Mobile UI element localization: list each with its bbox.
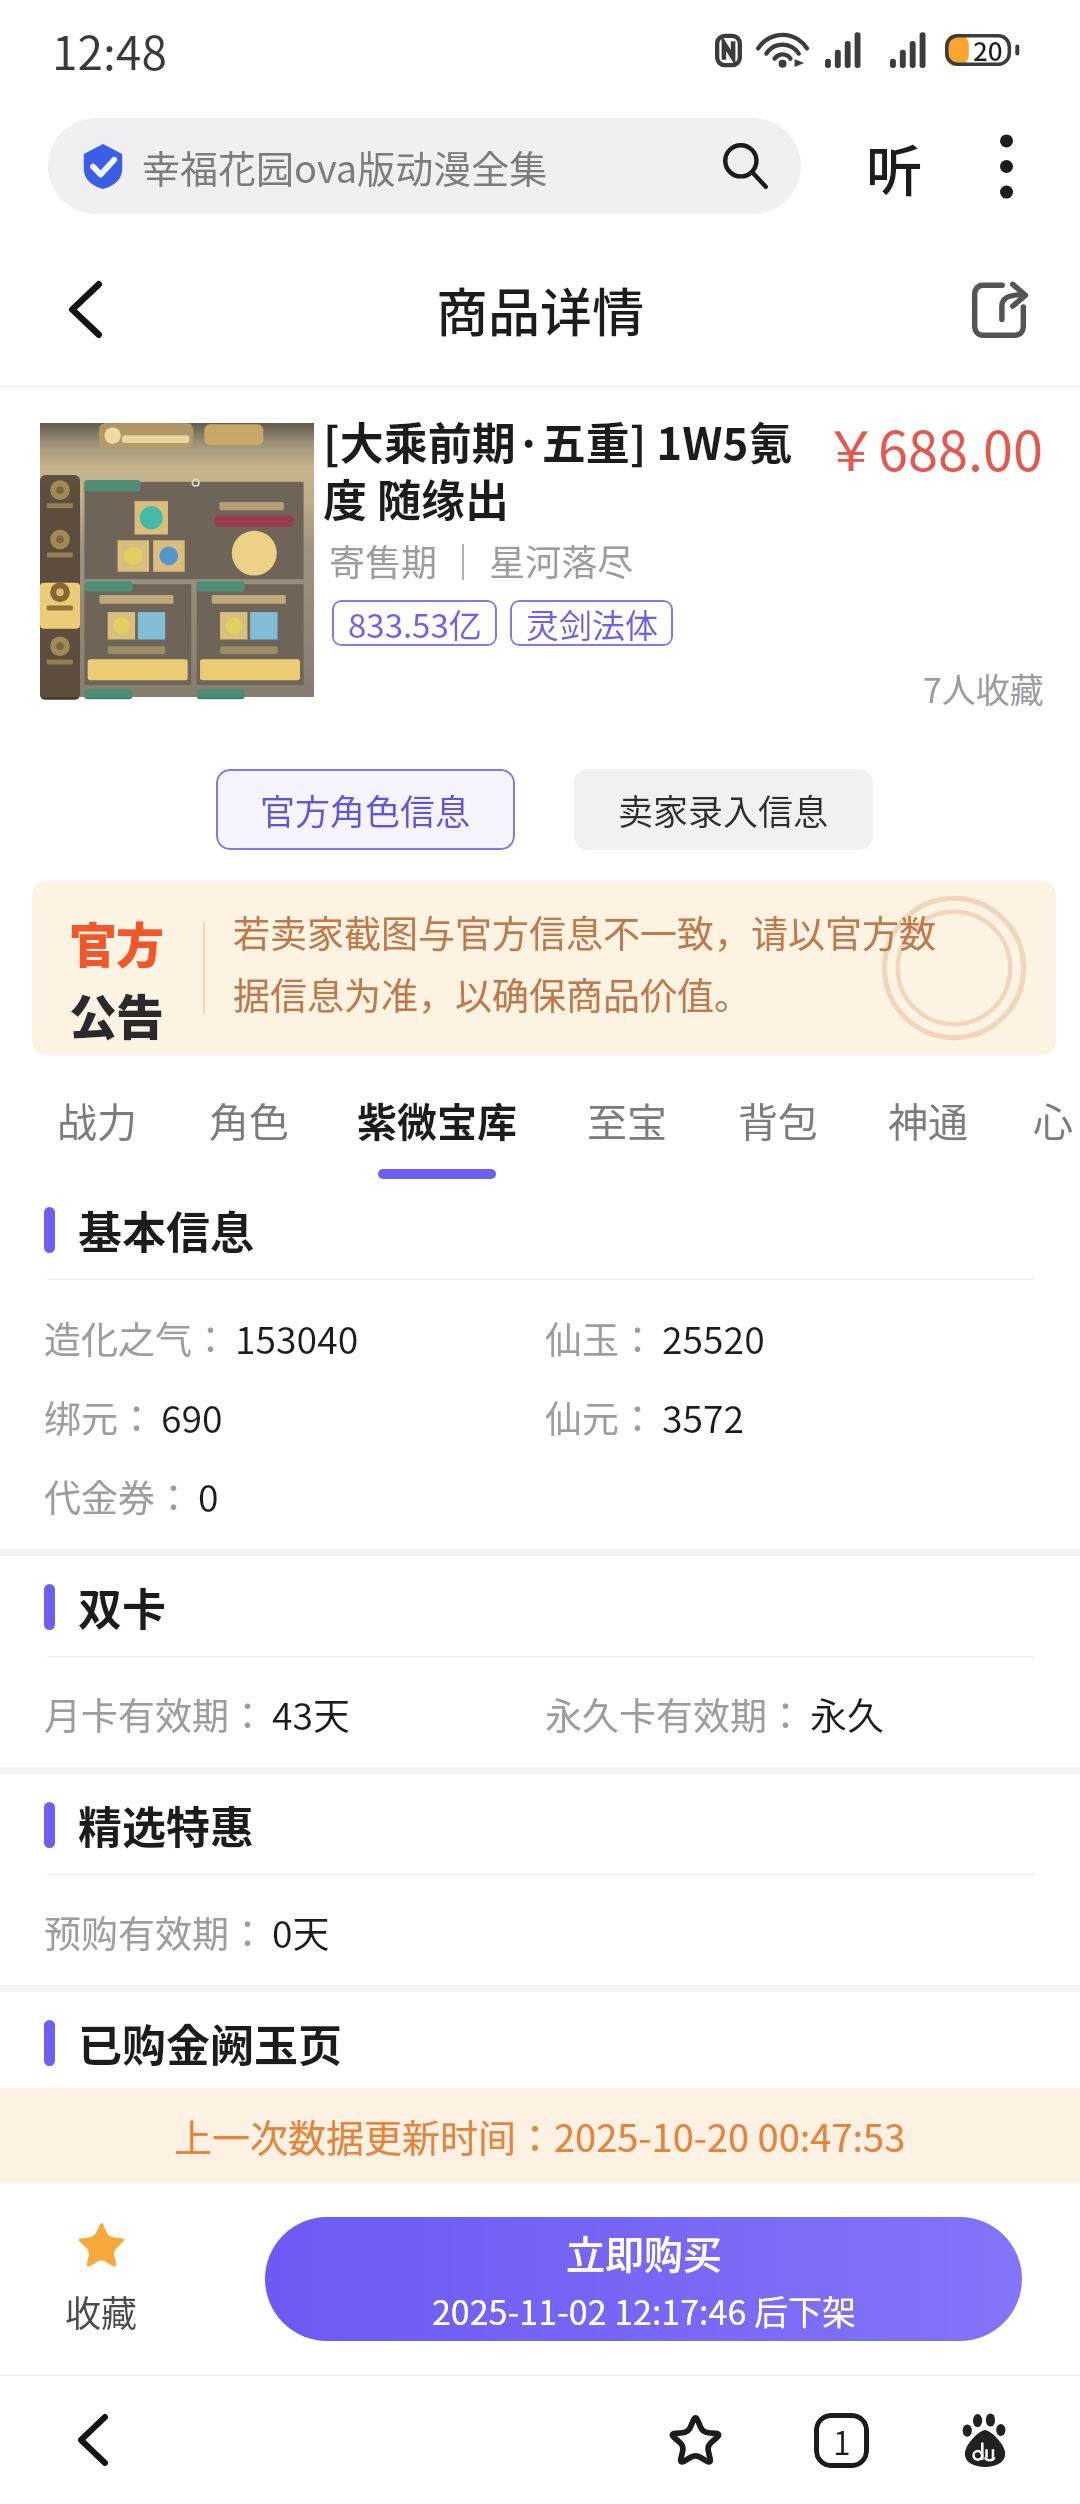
- button[interactable]: 神通: [876, 1087, 980, 1197]
- button[interactable]: 战力: [45, 1087, 149, 1197]
- staticText: 月卡有效期：: [44, 1687, 266, 1741]
- staticText: 833.53亿: [348, 600, 482, 646]
- staticText: 153040: [235, 1311, 359, 1365]
- staticText: 角色: [209, 1091, 289, 1149]
- button[interactable]: 833.53亿: [332, 600, 497, 646]
- staticText: 永久: [810, 1687, 884, 1741]
- staticText: 基本信息: [78, 1198, 254, 1262]
- staticText: 官方: [69, 907, 164, 977]
- staticText: 背包: [738, 1091, 818, 1149]
- staticText: 1: [833, 2418, 851, 2464]
- staticText: 立即购买: [566, 2224, 723, 2280]
- staticText: 心: [1033, 1091, 1073, 1149]
- button[interactable]: 卖家录入信息: [574, 769, 873, 850]
- staticText: 7人收藏: [923, 664, 1044, 713]
- staticText: 精选特惠: [78, 1793, 254, 1857]
- button[interactable]: Baidu home: [937, 2392, 1033, 2488]
- staticText: 3572: [662, 1390, 745, 1444]
- button[interactable]: 听: [838, 110, 950, 222]
- button[interactable]: 幸福花园ova版动漫全集: [48, 118, 801, 214]
- staticText: 仙元：: [545, 1390, 656, 1444]
- staticText: 卖家录入信息: [618, 784, 829, 835]
- staticText: 永久卡有效期：: [545, 1687, 804, 1741]
- staticText: 双卡: [78, 1575, 166, 1639]
- staticText: 690: [161, 1390, 223, 1444]
- staticText: 神通: [888, 1091, 968, 1149]
- staticText: 紫微宝库: [357, 1091, 517, 1149]
- staticText: 绑元：: [44, 1390, 155, 1444]
- staticText: 预购有效期：: [44, 1905, 266, 1959]
- staticText: 上一次数据更新时间：2025-10-20 00:47:53: [174, 2108, 906, 2163]
- staticText: 至宝: [587, 1091, 667, 1149]
- staticText: 43天: [272, 1687, 351, 1741]
- button[interactable]: 官方角色信息: [216, 769, 515, 850]
- staticText: 战力: [57, 1091, 137, 1149]
- staticText: 20: [973, 31, 1003, 69]
- staticText: 造化之气：: [44, 1311, 229, 1365]
- button[interactable]: 收藏: [33, 2222, 170, 2337]
- staticText: 0: [198, 1469, 219, 1523]
- button[interactable]: 角色: [197, 1087, 301, 1197]
- staticText: 收藏: [65, 2285, 138, 2337]
- staticText: 0天: [272, 1905, 330, 1959]
- button[interactable]: 立即购买: [265, 2217, 1022, 2341]
- button[interactable]: Tabs: [793, 2392, 889, 2488]
- staticText: ￥688.00: [824, 408, 1043, 486]
- button[interactable]: Bookmarks: [647, 2392, 743, 2488]
- staticText: 仙玉：: [545, 1311, 656, 1365]
- staticText: 若卖家截图与官方信息不一致，请以官方数: [233, 905, 936, 959]
- staticText: 商品详情: [436, 272, 645, 347]
- staticText: 2025-11-02 12:17:46 后下架: [432, 2286, 856, 2335]
- staticText: 已购金阙玉页: [78, 2011, 342, 2075]
- staticText: 寄售期 ｜ 星河落尽: [329, 534, 634, 586]
- button[interactable]: Back: [30, 254, 140, 364]
- button[interactable]: Product screenshot: [40, 423, 314, 697]
- staticText: [大乘前期·五重] 1W5氪度 随缘出: [323, 409, 795, 529]
- button[interactable]: 至宝: [575, 1087, 679, 1197]
- staticText: 幸福花园ova版动漫全集: [142, 139, 719, 194]
- staticText: 12:48: [52, 17, 167, 84]
- button[interactable]: Share: [944, 254, 1054, 364]
- button[interactable]: 心: [1026, 1087, 1080, 1197]
- button[interactable]: 背包: [726, 1087, 830, 1197]
- button[interactable]: 紫微宝库: [344, 1087, 530, 1197]
- staticText: 代金券：: [44, 1469, 192, 1523]
- staticText: 听: [866, 126, 922, 207]
- staticText: 公告: [69, 979, 164, 1049]
- staticText: 据信息为准，以确保商品价值。: [233, 967, 751, 1021]
- staticText: 25520: [662, 1311, 765, 1365]
- staticText: 官方角色信息: [260, 784, 471, 835]
- button[interactable]: More options: [960, 110, 1052, 222]
- button[interactable]: Back: [45, 2392, 141, 2488]
- button[interactable]: 灵剑法体: [510, 600, 673, 646]
- staticText: 灵剑法体: [526, 600, 658, 646]
